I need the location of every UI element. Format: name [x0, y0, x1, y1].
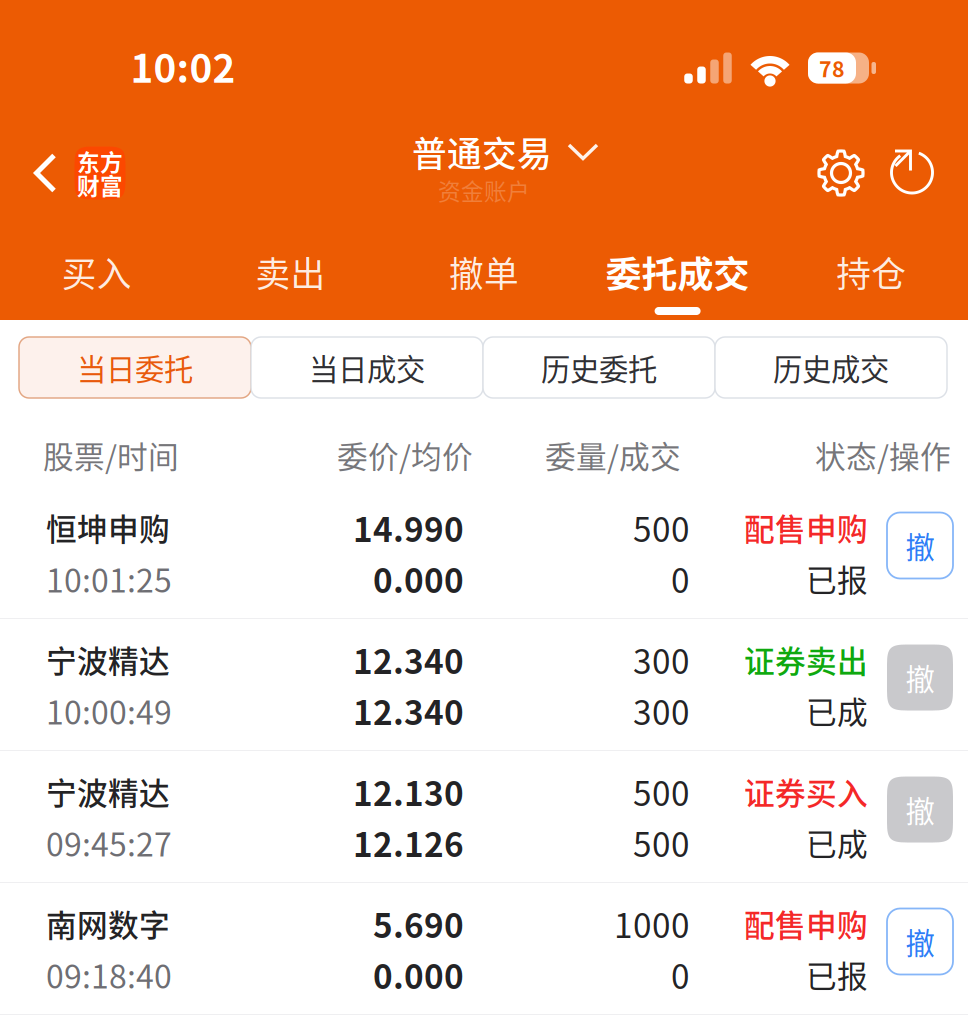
button[interactable]: 宁波精达	[0, 751, 968, 883]
staticText: 0	[671, 950, 690, 999]
staticText: 股票/时间	[43, 433, 179, 477]
staticText: 10:00:49	[46, 687, 172, 734]
staticText: 14.990	[353, 503, 464, 552]
staticText: 委托成交	[606, 246, 750, 298]
staticText: 300	[633, 635, 690, 684]
staticText: 500	[633, 818, 690, 867]
button[interactable]: 宁波精达	[0, 619, 968, 751]
button[interactable]: 东方财富	[69, 129, 131, 217]
button[interactable]: 普通交易	[412, 129, 604, 175]
staticText: 配售申购	[744, 901, 868, 946]
button[interactable]: Back	[22, 129, 69, 217]
staticText: 12.126	[353, 818, 464, 867]
button[interactable]: Refresh	[885, 129, 939, 217]
staticText: 撤	[905, 524, 934, 567]
staticText: 09:18:40	[46, 951, 172, 998]
button[interactable]: Settings	[809, 129, 873, 217]
staticText: 1000	[614, 899, 690, 948]
staticText: 500	[633, 503, 690, 552]
staticText: 10:02	[130, 38, 235, 94]
staticText: 已报	[806, 952, 868, 997]
staticText: 5.690	[373, 899, 464, 948]
staticText: 普通交易	[412, 127, 552, 177]
staticText: 当日委托	[77, 346, 193, 389]
button[interactable]: 卖出	[194, 230, 387, 320]
staticText: 宁波精达	[46, 637, 170, 682]
button[interactable]: 恒坤申购	[0, 487, 968, 619]
staticText: 当日成交	[309, 346, 425, 389]
button[interactable]: 历史委托	[483, 337, 715, 398]
staticText: 卖出	[255, 247, 325, 297]
staticText: 已成	[806, 820, 868, 865]
button[interactable]: 委托成交	[581, 230, 774, 320]
staticText: 委量/成交	[545, 433, 681, 477]
staticText: 09:45:27	[46, 819, 172, 866]
staticText: 南网数字	[46, 901, 170, 946]
staticText: 12.340	[353, 635, 464, 684]
staticText: 资金账户	[438, 174, 530, 206]
staticText: 撤	[905, 788, 934, 831]
button[interactable]: 买入	[0, 230, 194, 320]
staticText: 宁波精达	[46, 769, 170, 814]
button[interactable]: 撤单	[887, 776, 953, 842]
staticText: 持仓	[836, 247, 906, 297]
button[interactable]: 撤单	[887, 644, 953, 710]
staticText: 财富	[77, 173, 123, 197]
staticText: 撤单	[449, 247, 519, 297]
staticText: 500	[633, 767, 690, 816]
staticText: 东方	[77, 149, 123, 173]
staticText: 恒坤申购	[46, 505, 170, 550]
staticText: 买入	[62, 247, 132, 297]
staticText: 已报	[806, 556, 868, 601]
staticText: 已成	[806, 688, 868, 733]
button[interactable]: 撤单	[387, 230, 581, 320]
button[interactable]: 撤单	[887, 908, 953, 974]
staticText: 78	[819, 53, 845, 83]
staticText: 状态/操作	[815, 433, 951, 477]
button[interactable]: 南网数字	[0, 883, 968, 1015]
staticText: 证券买入	[744, 769, 868, 814]
staticText: 历史委托	[541, 346, 657, 389]
button[interactable]: 当日委托	[19, 337, 251, 398]
staticText: 12.130	[353, 767, 464, 816]
staticText: 证券卖出	[744, 637, 868, 682]
button[interactable]: 撤单	[887, 512, 953, 578]
button[interactable]: 历史成交	[715, 337, 947, 398]
staticText: 0.000	[373, 950, 464, 999]
staticText: 撤	[905, 920, 934, 963]
staticText: 12.340	[353, 686, 464, 735]
staticText: 10:01:25	[46, 555, 172, 602]
staticText: 配售申购	[744, 505, 868, 550]
button[interactable]: 当日成交	[251, 337, 483, 398]
staticText: 委价/均价	[337, 433, 473, 477]
staticText: 300	[633, 686, 690, 735]
staticText: 撤	[905, 656, 934, 699]
staticText: 0	[671, 554, 690, 603]
button[interactable]: 持仓	[774, 230, 968, 320]
staticText: 0.000	[373, 554, 464, 603]
staticText: 历史成交	[773, 346, 889, 389]
